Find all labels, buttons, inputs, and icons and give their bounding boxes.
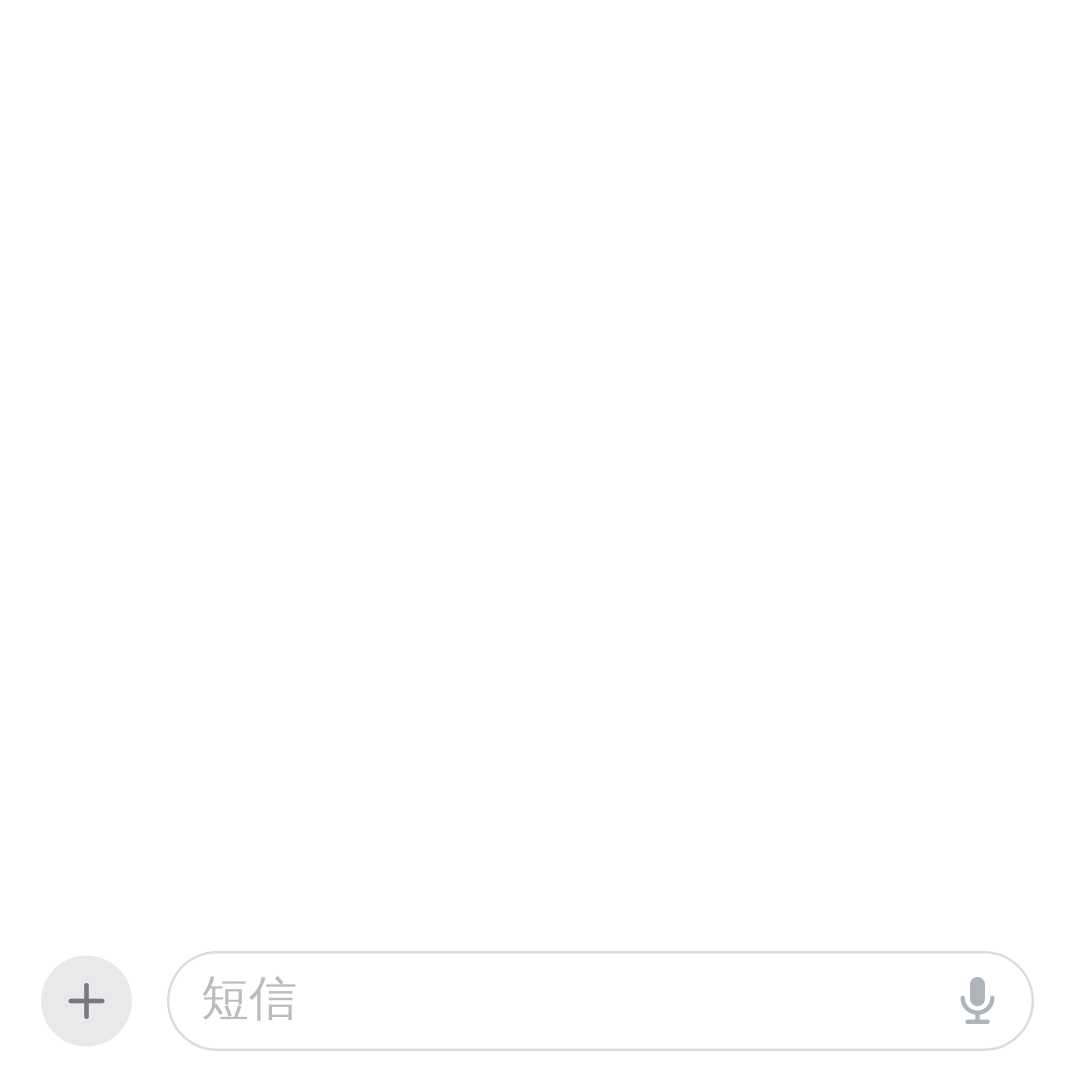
- staticText: 短信: [201, 969, 297, 1028]
- button[interactable]: Add attachment: [41, 955, 132, 1046]
- button[interactable]: 短信: [167, 951, 936, 1051]
- button[interactable]: Dictate: [936, 951, 1034, 1051]
